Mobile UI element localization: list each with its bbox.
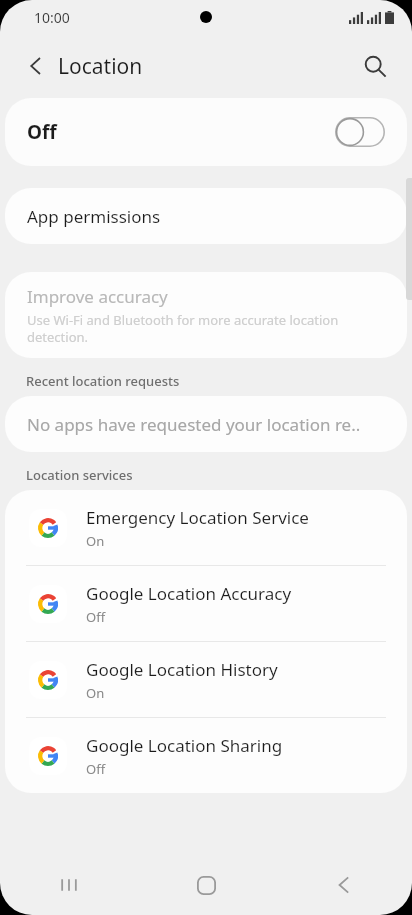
button[interactable]: Emergency Location Service [5,490,407,565]
staticText: Improve accuracy [27,285,168,308]
staticText: Use Wi-Fi and Bluetooth for more accurat… [27,311,385,346]
button[interactable]: Google Location Sharing [5,718,407,793]
button[interactable]: Google Location Accuracy [5,566,407,641]
button[interactable]: Home [138,855,275,915]
button[interactable]: Recent apps [0,855,138,915]
button[interactable]: Back [14,44,58,88]
button[interactable]: Location toggle, off [335,117,385,147]
staticText: 10:00 [34,8,70,27]
button[interactable]: App permissions [5,188,407,244]
staticText: App permissions [27,205,161,228]
staticText: No apps have requested your location re.… [27,413,361,436]
button[interactable]: Back [275,855,412,915]
staticText: On [86,684,105,702]
staticText: Recent location requests [26,372,180,390]
button[interactable]: Improve accuracy [5,272,407,358]
staticText: Google Location Accuracy [86,582,292,605]
staticText: Location services [26,466,133,484]
staticText: On [86,532,105,550]
staticText: Emergency Location Service [86,506,309,529]
button[interactable]: Google Location History [5,642,407,717]
staticText: Location [58,52,143,81]
staticText: Google Location History [86,658,278,681]
button[interactable]: Off [5,98,407,166]
staticText: Off [86,760,106,778]
staticText: Google Location Sharing [86,734,283,757]
button[interactable]: Search [352,43,398,89]
staticText: Off [86,608,106,626]
staticText: Off [27,119,57,145]
